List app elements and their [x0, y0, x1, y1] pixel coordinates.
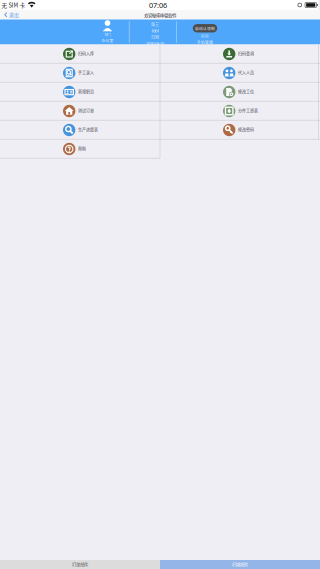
staticText: 办公室	[102, 38, 114, 43]
button[interactable]: 帮助	[0, 139, 160, 158]
button[interactable]: 新增职员	[0, 82, 160, 101]
button[interactable]: 生产进度表	[0, 120, 160, 139]
staticText: 退出	[9, 11, 19, 18]
staticText: 帮助	[78, 146, 86, 152]
button[interactable]: 代入人员	[160, 63, 320, 82]
staticText: 手工录入	[78, 70, 94, 76]
button[interactable]: 手工录入	[0, 63, 160, 82]
staticText: 扫码入库	[78, 51, 94, 57]
staticText: 2020-04-15	[146, 41, 164, 46]
staticText: 新增职员	[78, 89, 94, 95]
staticText: 分件工资表	[238, 108, 258, 114]
button[interactable]: 扫描部件	[160, 560, 320, 569]
staticText: 修改工位	[238, 89, 254, 95]
button[interactable]: 打单部件	[0, 560, 160, 569]
button[interactable]: 自动认领制	[193, 24, 217, 32]
staticText: 张三	[151, 22, 159, 27]
button[interactable]: 扫码入库	[0, 44, 160, 63]
staticText: 无 SIM 卡	[1, 1, 25, 9]
staticText: 部门	[105, 32, 111, 37]
button[interactable]: 部门	[102, 20, 114, 43]
staticText: 07:06	[149, 0, 167, 10]
staticText: 日期	[151, 34, 159, 40]
button[interactable]: 扫码查询	[160, 44, 320, 63]
staticText: 打单部件	[72, 561, 88, 568]
staticText: 生产进度表	[78, 127, 98, 133]
button[interactable]: 测试订单	[0, 101, 160, 120]
button[interactable]: 退出	[0, 10, 25, 19]
staticText: 代入人员	[238, 70, 254, 76]
staticText: 1001	[151, 28, 159, 34]
button[interactable]: 修改密码	[160, 120, 320, 139]
staticText: 权限	[201, 33, 209, 39]
staticText: 自动认领制	[195, 26, 215, 31]
staticText: 修改密码	[238, 127, 254, 133]
staticText: 测试订单	[78, 108, 94, 114]
staticText: 手机管理	[197, 39, 213, 45]
staticText: 欢迎使用申豪软件	[144, 12, 176, 19]
button[interactable]: 分件工资表	[160, 101, 320, 120]
button[interactable]: 修改工位	[160, 82, 320, 101]
staticText: 扫描部件	[232, 561, 248, 568]
staticText: 扫码查询	[238, 51, 254, 57]
